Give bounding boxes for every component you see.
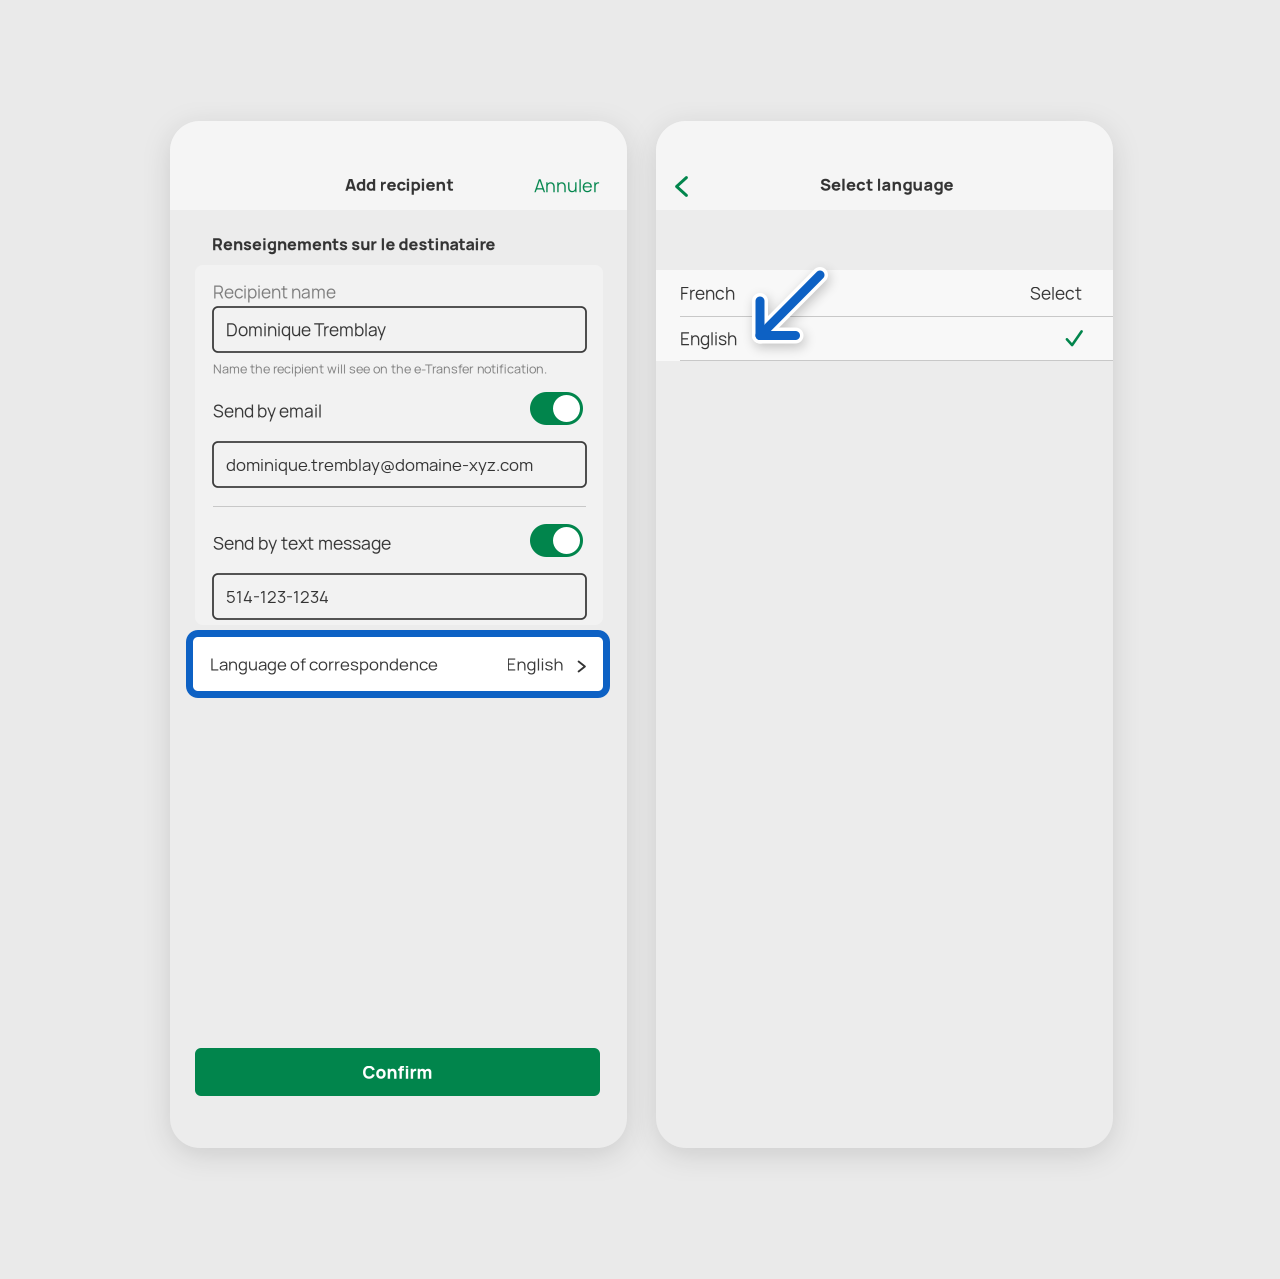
staticText: dominique.tremblay@domaine-xyz.com [226, 453, 533, 476]
staticText: Select [820, 173, 873, 196]
button[interactable]: Confirm [195, 1048, 600, 1096]
staticText: Send by email [213, 399, 322, 423]
staticText: sur [351, 233, 377, 255]
button[interactable]: Annuler [518, 161, 616, 210]
staticText: Select [1030, 281, 1082, 305]
staticText: Confirm [362, 1060, 432, 1084]
button[interactable]: English [656, 317, 1113, 360]
staticText: Dominique Tremblay [226, 318, 386, 341]
button[interactable]: Back [656, 161, 707, 212]
button[interactable]: Send by email [530, 392, 583, 425]
button[interactable]: Send by text message [530, 524, 583, 557]
staticText: English [506, 652, 563, 675]
button[interactable]: Language of correspondence [186, 630, 610, 698]
staticText: language [877, 173, 954, 196]
staticText: French [680, 281, 735, 305]
staticText: Renseignements [212, 233, 348, 255]
staticText: 514-123-1234 [226, 585, 329, 608]
button[interactable]: French [656, 270, 1113, 316]
staticText: Recipient name [213, 280, 336, 304]
staticText: Annuler [534, 173, 600, 198]
staticText: Name the recipient will see on the e-Tra… [213, 360, 547, 377]
staticText: Send by text message [213, 531, 391, 555]
staticText: Add [345, 173, 376, 196]
staticText: recipient [380, 173, 454, 196]
staticText: English [680, 327, 737, 350]
staticText: le [380, 233, 395, 255]
staticText: destinataire [399, 233, 496, 255]
staticText: Language of correspondence [210, 652, 438, 675]
